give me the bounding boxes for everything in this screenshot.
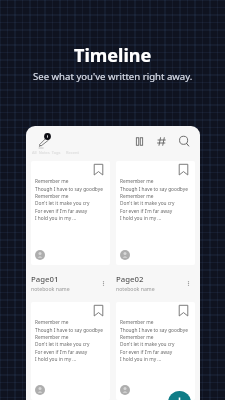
button[interactable]: Account: [120, 385, 130, 395]
staticText: Recent: [66, 150, 79, 155]
staticText: Don't let it make you cry: [120, 341, 175, 348]
staticText: Remember me: [35, 319, 69, 326]
button[interactable]: Add note: [168, 391, 191, 400]
staticText: Don't let it make you cry: [35, 200, 90, 207]
button[interactable]: More options: [183, 278, 194, 289]
staticText: Though I have to say goodbye: [35, 186, 103, 193]
button[interactable]: Account: [35, 385, 45, 395]
staticText: Remember me: [120, 193, 154, 200]
staticText: I hold you in my ...: [35, 215, 77, 222]
staticText: For even if I'm far away: [120, 349, 173, 356]
button[interactable]: Bookmark: [92, 304, 105, 317]
staticText: For even if I'm far away: [120, 208, 173, 215]
button[interactable]: Account: [120, 250, 130, 260]
staticText: Timeline: [74, 43, 152, 68]
button[interactable]: Bookmark: [116, 302, 195, 400]
button[interactable]: Search: [177, 134, 192, 149]
staticText: Remember me: [35, 334, 69, 341]
staticText: I hold you in my ...: [120, 215, 162, 222]
button[interactable]: Profile: [34, 129, 54, 149]
button[interactable]: Tags: [154, 134, 169, 149]
staticText: Though I have to say goodbye: [120, 327, 188, 334]
staticText: Page01: [31, 274, 59, 285]
button[interactable]: Bookmark: [31, 161, 110, 265]
staticText: Page02: [116, 274, 144, 285]
staticText: See what you've written right away.: [33, 70, 193, 83]
button[interactable]: Page01: [31, 274, 109, 292]
staticText: notebook name: [116, 285, 155, 292]
staticText: I hold you in my ...: [120, 356, 162, 363]
staticText: Though I have to say goodbye: [35, 327, 103, 334]
button[interactable]: Bookmark: [116, 161, 195, 265]
staticText: I hold you in my ...: [35, 356, 77, 363]
staticText: Don't let it make you cry: [35, 341, 90, 348]
staticText: Remember me: [35, 193, 69, 200]
button[interactable]: Page02: [116, 274, 194, 292]
button[interactable]: Bookmark: [31, 302, 110, 400]
button[interactable]: Bookmark: [92, 163, 105, 176]
staticText: For even if I'm far away: [35, 349, 88, 356]
button[interactable]: Account: [35, 250, 45, 260]
staticText: notebook name: [31, 285, 70, 292]
button[interactable]: Bookmark: [177, 304, 190, 317]
staticText: Remember me: [120, 334, 154, 341]
staticText: Remember me: [120, 178, 154, 185]
button[interactable]: Bookmark: [177, 163, 190, 176]
staticText: For even if I'm far away: [35, 208, 88, 215]
staticText: All Notes Tags: [32, 150, 61, 155]
staticText: Remember me: [120, 319, 154, 326]
button[interactable]: Layout: [132, 134, 147, 149]
staticText: Don't let it make you cry: [120, 200, 175, 207]
staticText: Remember me: [35, 178, 69, 185]
staticText: Though I have to say goodbye: [120, 186, 188, 193]
button[interactable]: More options: [98, 278, 109, 289]
